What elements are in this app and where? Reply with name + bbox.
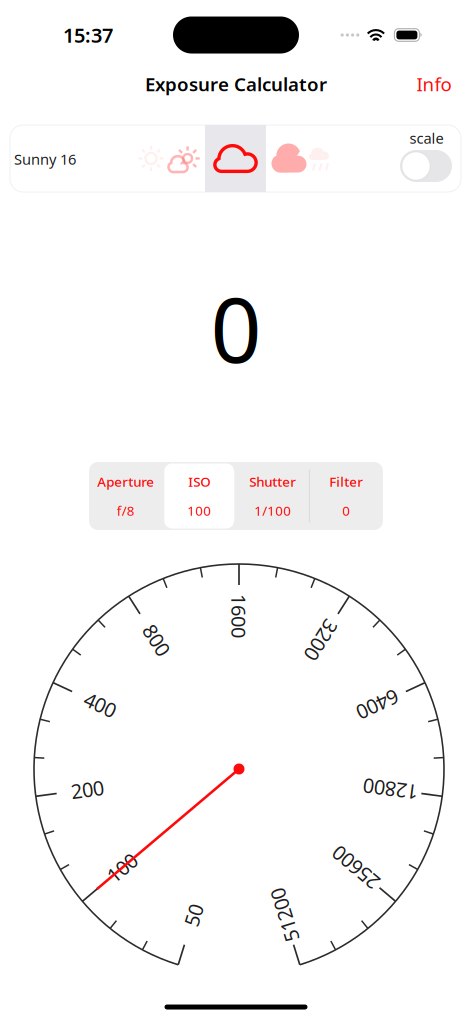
button[interactable]: Sunny [129,125,173,192]
staticText: Exposure Calculator [145,72,327,96]
staticText: 0 [342,502,350,519]
button[interactable]: Cloudy [205,125,266,192]
staticText: Shutter [249,473,296,490]
button[interactable]: Aperture [89,462,162,530]
staticText: ISO [188,473,210,490]
staticText: Filter [329,473,363,490]
staticText: 12800 [363,776,418,803]
staticText: 51200 [257,902,312,928]
button[interactable]: Info [406,64,461,104]
button[interactable]: Overcast [258,125,319,192]
staticText: Aperture [97,473,154,490]
staticText: f/8 [117,502,135,519]
staticText: 3200 [299,627,343,653]
staticText: 200 [71,776,104,803]
button[interactable]: Shutter [236,462,309,530]
button[interactable]: Rain [289,125,350,192]
button[interactable]: scale [400,150,452,182]
staticText: 800 [140,627,173,653]
staticText: 6400 [356,691,400,718]
staticText: scale [409,128,443,148]
staticText: Info [416,72,451,96]
staticText: 400 [84,691,117,718]
button[interactable]: Filter [309,462,383,530]
staticText: 50 [183,902,205,928]
staticText: 1/100 [254,502,291,519]
staticText: 1600 [217,603,261,629]
button[interactable]: Partly cloudy [154,126,210,193]
staticText: 0 [210,269,261,387]
staticText: 25600 [328,854,383,881]
staticText: 100 [106,854,139,881]
staticText: Sunny 16 [14,149,76,169]
staticText: 100 [187,502,211,519]
button[interactable]: ISO [162,462,236,530]
staticText: 15:37 [63,22,113,48]
